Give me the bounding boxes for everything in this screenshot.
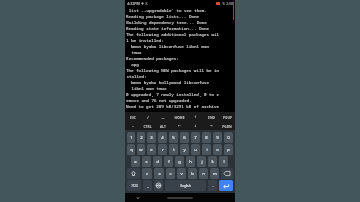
- staticText: 2:08: [226, 1, 233, 6]
- staticText: Reading package lists... Done: [126, 14, 199, 20]
- staticText: list --upgradable' to see them.: [126, 8, 207, 14]
- button[interactable]: m: [210, 168, 219, 179]
- button[interactable]: e: [147, 144, 156, 155]
- staticText: tmux: [126, 50, 142, 56]
- button[interactable]: j: [197, 156, 206, 167]
- button[interactable]: Enter: [219, 180, 233, 191]
- staticText: Need to get 289 kB/3291 kB of archive: [126, 104, 219, 110]
- button[interactable]: ↑: [187, 112, 203, 121]
- button[interactable]: l: [219, 156, 228, 167]
- button[interactable]: ALT: [155, 121, 171, 130]
- button[interactable]: i: [202, 144, 211, 155]
- button[interactable]: o: [213, 144, 222, 155]
- button[interactable]: ~: [125, 121, 140, 130]
- staticText: ALT: [160, 124, 166, 128]
- button[interactable]: 3: [147, 132, 156, 143]
- staticText: a: [134, 159, 137, 165]
- staticText: t: [173, 147, 175, 153]
- staticText: 4: [161, 135, 164, 141]
- staticText: K: [145, 1, 148, 6]
- button[interactable]: ESC: [125, 112, 140, 121]
- button[interactable]: y: [180, 144, 189, 155]
- button[interactable]: ↓: [187, 121, 203, 130]
- button[interactable]: ←: [171, 121, 187, 130]
- staticText: f: [168, 159, 170, 165]
- button[interactable]: CTRL: [140, 121, 155, 130]
- button[interactable]: Back: [135, 195, 141, 201]
- button[interactable]: Backspace: [221, 168, 233, 179]
- button[interactable]: 1: [127, 132, 135, 143]
- button[interactable]: 0: [224, 132, 233, 143]
- button[interactable]: ,: [143, 180, 152, 191]
- staticText: z: [146, 171, 148, 177]
- staticText: END: [208, 115, 215, 119]
- button[interactable]: HOME: [171, 112, 187, 121]
- button[interactable]: 4: [158, 132, 167, 143]
- button[interactable]: q: [127, 144, 135, 155]
- staticText: HOME: [174, 115, 185, 119]
- button[interactable]: 8: [202, 132, 211, 143]
- button[interactable]: 5: [169, 132, 178, 143]
- staticText: 9: [216, 135, 219, 141]
- button[interactable]: b: [188, 168, 197, 179]
- button[interactable]: Change language: [154, 180, 163, 191]
- button[interactable]: 7: [191, 132, 200, 143]
- staticText: p: [227, 147, 230, 153]
- button[interactable]: k: [208, 156, 217, 167]
- button[interactable]: v: [177, 168, 186, 179]
- staticText: PGDN: [222, 124, 232, 128]
- staticText: The following additional packages wil: [126, 32, 219, 38]
- button[interactable]: p: [224, 144, 233, 155]
- button[interactable]: f: [164, 156, 173, 167]
- button[interactable]: h: [186, 156, 195, 167]
- staticText: ,: [147, 183, 149, 189]
- staticText: /: [147, 115, 149, 119]
- staticText: q: [130, 147, 133, 153]
- button[interactable]: d: [153, 156, 162, 167]
- staticText: ↓: [194, 124, 197, 128]
- staticText: —: [161, 115, 165, 119]
- staticText: ESC: [130, 115, 136, 119]
- button[interactable]: →: [203, 121, 219, 130]
- staticText: y: [183, 147, 186, 153]
- staticText: Reading state information... Done: [126, 26, 209, 32]
- button[interactable]: 6: [180, 132, 189, 143]
- staticText: ~: [132, 124, 134, 128]
- button[interactable]: w: [137, 144, 145, 155]
- staticText: b: [191, 171, 194, 177]
- button[interactable]: u: [191, 144, 200, 155]
- button[interactable]: g: [175, 156, 184, 167]
- staticText: stalled:: [126, 74, 147, 80]
- button[interactable]: English: [165, 180, 206, 191]
- button[interactable]: s: [142, 156, 151, 167]
- staticText: l be installed:: [126, 38, 164, 44]
- button[interactable]: Shift: [127, 168, 140, 179]
- button[interactable]: PGUP: [219, 112, 235, 121]
- staticText: bmon byobu hollywood libconfuse: [126, 80, 209, 86]
- button[interactable]: —: [155, 112, 171, 121]
- button[interactable]: 2: [137, 132, 145, 143]
- button[interactable]: 9: [213, 132, 222, 143]
- button[interactable]: x: [154, 168, 164, 179]
- button[interactable]: /: [140, 112, 155, 121]
- button[interactable]: .: [208, 180, 217, 191]
- staticText: s: [145, 159, 148, 165]
- button[interactable]: n: [199, 168, 208, 179]
- button[interactable]: END: [203, 112, 219, 121]
- staticText: →: [210, 124, 213, 128]
- button[interactable]: c: [166, 168, 175, 179]
- staticText: d: [156, 159, 159, 165]
- button[interactable]: z: [142, 168, 152, 179]
- button[interactable]: t: [169, 144, 178, 155]
- staticText: emove and 76 not upgraded.: [126, 98, 192, 104]
- staticText: ?123: [131, 184, 138, 188]
- button[interactable]: PGDN: [219, 121, 235, 130]
- button[interactable]: ?123: [127, 180, 141, 191]
- staticText: %: [222, 2, 225, 6]
- staticText: k: [211, 159, 214, 165]
- staticText: i: [206, 147, 208, 153]
- button[interactable]: Home: [167, 197, 193, 199]
- staticText: 3: [150, 135, 153, 141]
- button[interactable]: r: [158, 144, 167, 155]
- button[interactable]: a: [131, 156, 140, 167]
